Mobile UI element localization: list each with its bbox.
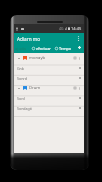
staticText: Drum xyxy=(29,85,41,91)
button[interactable]: Drum xyxy=(14,83,84,93)
button[interactable]: Gnb xyxy=(14,63,84,73)
button[interactable]: monayb xyxy=(14,53,84,63)
staticText: Sonrd xyxy=(17,76,27,81)
button[interactable]: More options xyxy=(74,34,83,43)
staticText: Gnb xyxy=(17,66,25,71)
staticText: Adiarn mo xyxy=(17,36,40,42)
staticText: Sord xyxy=(17,96,25,101)
button[interactable]: Tempo xyxy=(54,44,73,53)
staticText: efectuar xyxy=(36,46,51,51)
button[interactable]: Sonrd xyxy=(14,73,84,83)
button[interactable]: ajuda xyxy=(15,44,26,53)
button[interactable]: Sord xyxy=(14,93,84,103)
button[interactable]: Sondagti xyxy=(14,103,84,113)
staticText: 14:45 xyxy=(71,26,82,31)
staticText: Sondagti xyxy=(17,106,33,111)
staticText: monayb xyxy=(29,55,46,61)
staticText: Tempo xyxy=(59,46,72,51)
button[interactable]: Add xyxy=(76,44,83,51)
staticText: ajuda xyxy=(15,46,26,52)
staticText: 4G xyxy=(59,26,64,31)
button[interactable]: efectuar xyxy=(31,44,52,53)
